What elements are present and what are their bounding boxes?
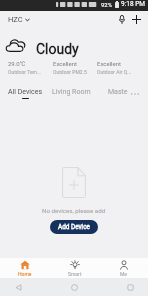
staticText: All Devices — [8, 88, 43, 96]
staticText: Excellent — [97, 60, 122, 67]
staticText: Smart — [68, 271, 82, 277]
button[interactable]: Living Room — [52, 88, 91, 96]
button[interactable]: Recents — [124, 281, 136, 293]
staticText: Outdoor Air Q... — [97, 69, 132, 75]
staticText: No devices, please add — [42, 207, 106, 214]
staticText: Cloudy — [36, 41, 79, 57]
button[interactable]: HZC — [6, 13, 32, 26]
button[interactable]: 29.0℃ — [8, 60, 52, 75]
button[interactable]: Excellent — [97, 60, 141, 75]
button[interactable]: Add Device — [50, 220, 98, 234]
staticText: Outdoor PM2.5 — [53, 69, 87, 75]
staticText: Add Device — [58, 223, 90, 231]
button[interactable]: Excellent — [53, 60, 97, 75]
staticText: HZC — [8, 15, 23, 24]
button[interactable]: Back — [12, 281, 24, 293]
staticText: 29.0℃ — [8, 60, 25, 67]
staticText: 92% — [101, 1, 113, 8]
staticText: 9:18 PM — [121, 0, 145, 8]
staticText: Me — [120, 271, 128, 277]
button[interactable]: Home — [0, 258, 50, 278]
button[interactable]: Home — [68, 281, 80, 293]
button[interactable]: Maste — [108, 88, 128, 96]
button[interactable]: Add device — [129, 12, 144, 27]
button[interactable]: All Devices — [8, 88, 43, 99]
button[interactable]: Smart — [50, 258, 99, 278]
staticText: Excellent — [53, 60, 78, 67]
button[interactable]: Me — [99, 258, 148, 278]
button[interactable]: Voice assistant — [114, 12, 129, 27]
staticText: Home — [18, 271, 32, 277]
button[interactable]: More rooms — [129, 88, 141, 99]
staticText: Outdoor Tem... — [8, 69, 41, 75]
